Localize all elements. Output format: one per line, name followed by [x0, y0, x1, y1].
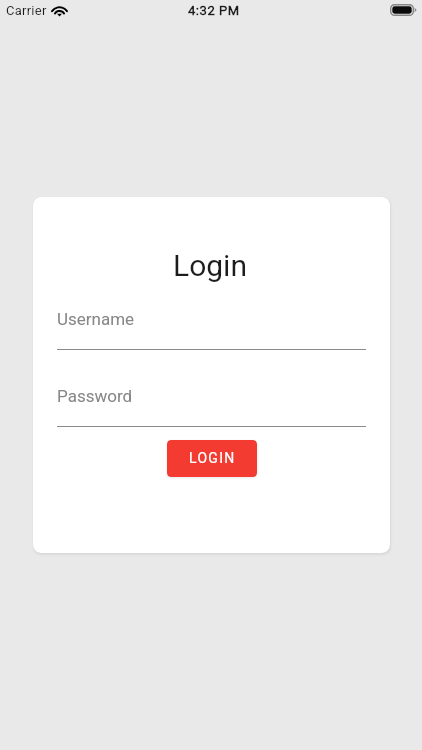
staticText: LOGIN	[189, 450, 236, 466]
staticText: Carrier	[6, 3, 47, 18]
button[interactable]: Username	[57, 307, 366, 350]
staticText: 4:32 PM	[188, 3, 240, 18]
other: Wi-Fi signal	[52, 6, 68, 17]
staticText: Username	[57, 309, 135, 329]
other: Battery full	[390, 4, 417, 16]
staticText: Login	[173, 248, 247, 283]
button[interactable]: LOGIN	[167, 440, 257, 477]
staticText: Password	[57, 386, 133, 406]
button[interactable]: Password	[57, 384, 366, 427]
